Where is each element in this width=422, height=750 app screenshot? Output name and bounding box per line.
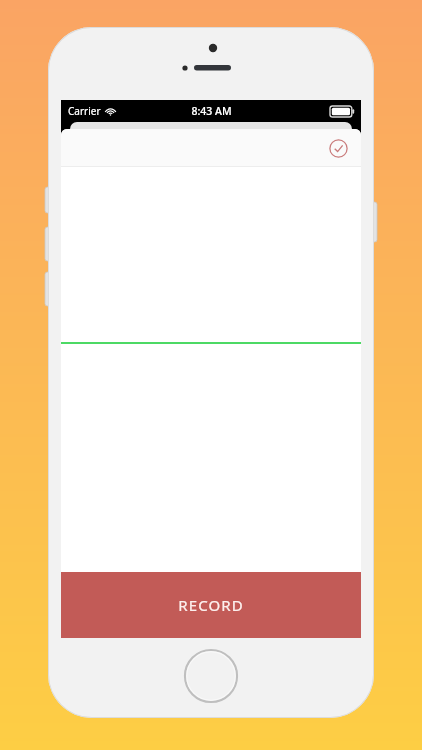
button[interactable]: Confirm [323, 133, 353, 163]
button[interactable]: RECORD [61, 572, 361, 638]
button[interactable]: Home [183, 648, 239, 704]
staticText: 8:43 AM [191, 104, 232, 118]
staticText: Carrier [68, 104, 101, 118]
staticText: RECORD [178, 595, 244, 615]
